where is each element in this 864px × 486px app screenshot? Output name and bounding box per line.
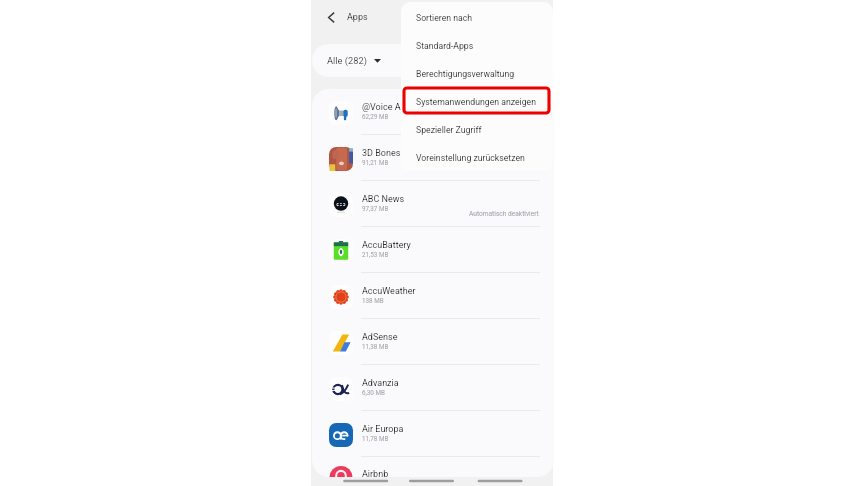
staticText: 91,21 MB <box>362 159 389 166</box>
staticText: Advanzia <box>362 378 399 389</box>
staticText: Systemanwendungen anzeigen <box>416 97 536 107</box>
button[interactable]: Advanzia <box>312 365 554 411</box>
staticText: 21,53 MB <box>362 251 389 258</box>
button[interactable]: Airbnb <box>312 456 554 477</box>
staticText: @Voice Aloud Reader <box>362 102 449 113</box>
button[interactable]: Berechtigungsverwaltung <box>401 60 553 88</box>
button[interactable]: AdSense <box>312 319 554 365</box>
staticText: AdSense <box>362 332 398 343</box>
staticText: Voreinstellung zurücksetzen <box>416 153 525 163</box>
button[interactable]: Spezieller Zugriff <box>401 116 553 144</box>
button[interactable]: Back <box>324 10 338 24</box>
staticText: 138 MB <box>362 297 384 304</box>
staticText: AccuBattery <box>362 240 411 251</box>
button[interactable]: Back <box>311 6 553 28</box>
button[interactable]: Standard-Apps <box>401 32 553 60</box>
staticText: 11,38 MB <box>362 343 389 350</box>
staticText: Air Europa <box>362 424 404 435</box>
staticText: Spezieller Zugriff <box>416 125 482 135</box>
button[interactable]: ABC News <box>312 181 554 227</box>
staticText: Standard-Apps <box>416 41 474 51</box>
staticText: Sortieren nach <box>416 13 473 23</box>
button[interactable]: Air Europa <box>312 411 554 457</box>
staticText: Airbnb <box>362 469 389 477</box>
staticText: 11,78 MB <box>362 435 389 442</box>
button[interactable]: Systemanwendungen anzeigen <box>401 88 553 116</box>
staticText: 3D Bones <box>362 148 401 159</box>
button[interactable]: Voreinstellung zurücksetzen <box>401 144 553 171</box>
staticText: Automatisch deaktiviert <box>469 210 539 218</box>
button[interactable]: Alle (282) <box>312 44 538 77</box>
staticText: AccuWeather <box>362 286 416 297</box>
staticText: Berechtigungsverwaltung <box>416 69 515 79</box>
button[interactable]: 3D Bones <box>312 135 554 181</box>
button[interactable]: @Voice Aloud Reader <box>312 89 554 135</box>
staticText: ABC News <box>362 194 405 205</box>
button[interactable]: AccuBattery <box>312 227 554 273</box>
staticText: 97,37 MB <box>362 205 389 212</box>
button[interactable]: AccuWeather <box>312 273 554 319</box>
button[interactable]: Sortieren nach <box>401 4 553 32</box>
staticText: 62,29 MB <box>362 113 389 120</box>
staticText: 6,30 MB <box>362 389 385 396</box>
staticText: Apps <box>347 12 368 23</box>
staticText: Alle (282) <box>327 55 367 66</box>
